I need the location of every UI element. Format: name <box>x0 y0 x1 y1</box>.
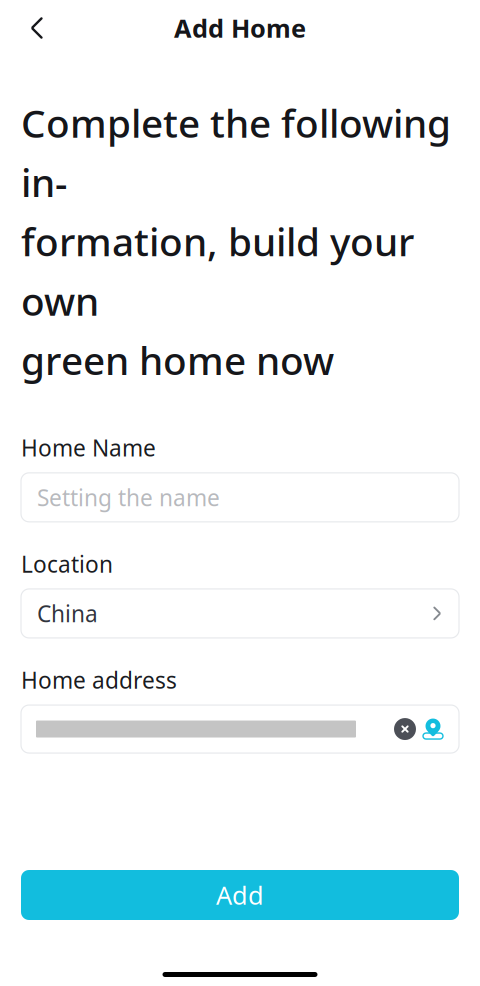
staticText: China <box>37 598 98 628</box>
staticText: Home address <box>21 665 177 695</box>
staticText: Home Name <box>21 433 156 463</box>
staticText: Complete the following in- formation, bu… <box>21 97 451 386</box>
button[interactable]: Setting the name <box>21 473 459 522</box>
button[interactable]: Add <box>21 870 459 920</box>
button[interactable]: China <box>21 589 459 638</box>
staticText: Add Home <box>174 11 306 45</box>
button[interactable]: Back <box>15 6 59 50</box>
staticText: Setting the name <box>37 482 220 512</box>
button[interactable]: Clear address <box>391 715 419 743</box>
staticText: Add <box>216 878 264 912</box>
staticText: Location <box>21 549 113 579</box>
button[interactable]: Use current location <box>419 715 447 743</box>
